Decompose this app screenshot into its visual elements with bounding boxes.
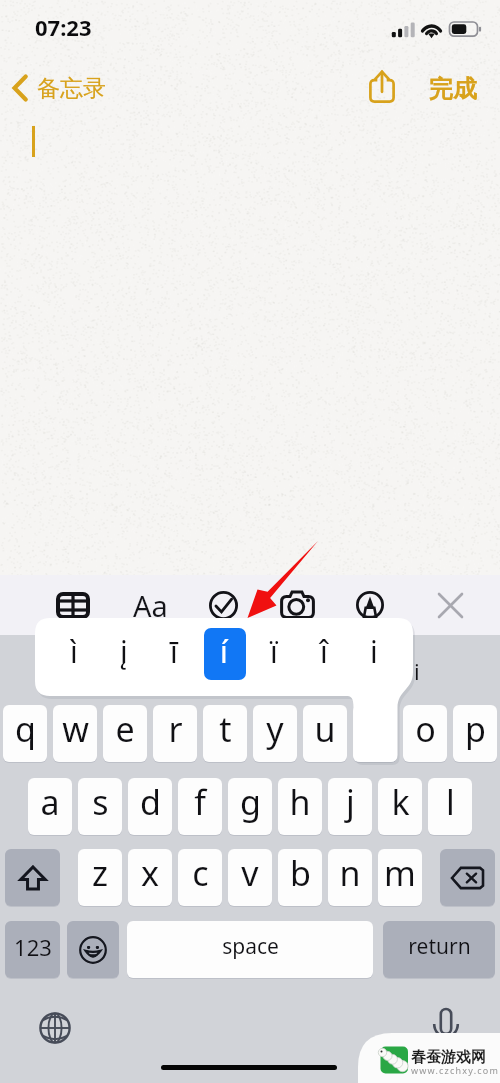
staticText: ï	[270, 631, 278, 672]
staticText: ì	[70, 631, 78, 672]
button[interactable]: h	[278, 778, 322, 835]
staticText: t	[219, 706, 232, 752]
button[interactable]: í	[202, 628, 246, 680]
button[interactable]: s	[78, 778, 122, 835]
staticText: k	[391, 779, 410, 825]
button[interactable]	[204, 628, 246, 680]
button[interactable]: ì	[52, 628, 96, 680]
button[interactable]: Share	[359, 64, 405, 110]
button[interactable]: f	[178, 778, 222, 835]
button[interactable]: Table	[48, 575, 98, 635]
staticText: e	[115, 706, 135, 752]
staticText: a	[40, 779, 60, 825]
staticText: c	[192, 850, 209, 896]
button[interactable]: Shift	[5, 849, 60, 906]
staticText: p	[465, 706, 486, 752]
staticText: u	[314, 706, 336, 752]
button[interactable]: a	[28, 778, 72, 835]
staticText: 07:23	[35, 12, 92, 42]
button[interactable]: 备忘录	[4, 66, 114, 110]
button[interactable]: space	[127, 921, 373, 978]
button[interactable]: 完成	[416, 66, 490, 112]
staticText: b	[290, 850, 311, 896]
staticText: r	[168, 706, 183, 752]
button[interactable]: c	[178, 849, 222, 906]
staticText: m	[384, 850, 416, 896]
button[interactable]: g	[228, 778, 272, 835]
button[interactable]: i	[353, 705, 397, 762]
button[interactable]: return	[383, 921, 495, 978]
button[interactable]: n	[328, 849, 372, 906]
staticText: į	[120, 631, 128, 672]
staticText: d	[140, 779, 161, 825]
staticText: x	[141, 850, 159, 896]
button[interactable]: m	[378, 849, 422, 906]
button[interactable]: Camera	[272, 575, 322, 635]
staticText: 春蚕游戏网	[411, 1048, 486, 1067]
button[interactable]: 123	[5, 921, 60, 978]
staticText: 备忘录	[37, 74, 106, 103]
button[interactable]: j	[328, 778, 372, 835]
button[interactable]: y	[253, 705, 297, 762]
button[interactable]: Markup	[345, 575, 395, 635]
staticText: Aa	[133, 586, 168, 625]
staticText: w	[62, 706, 89, 752]
staticText: í	[220, 631, 228, 672]
staticText: l	[446, 779, 455, 825]
button[interactable]: i	[352, 628, 396, 680]
staticText: f	[194, 779, 206, 825]
button[interactable]: p	[453, 705, 497, 762]
button[interactable]: e	[103, 705, 147, 762]
staticText: n	[339, 850, 361, 896]
button[interactable]: į	[102, 628, 146, 680]
staticText: i	[370, 631, 378, 672]
staticText: h	[289, 779, 311, 825]
button[interactable]: d	[128, 778, 172, 835]
button[interactable]: l	[428, 778, 472, 835]
button[interactable]: t	[203, 705, 247, 762]
staticText: 完成	[429, 74, 477, 104]
staticText: return	[408, 932, 471, 961]
staticText: 123	[14, 932, 52, 962]
button[interactable]: b	[278, 849, 322, 906]
staticText: z	[92, 850, 108, 896]
button[interactable]: Backspace	[440, 849, 495, 906]
staticText: î	[320, 631, 328, 672]
button[interactable]: Checklist	[198, 575, 248, 635]
button[interactable]: o	[403, 705, 447, 762]
staticText: space	[222, 932, 279, 961]
button[interactable]: z	[78, 849, 122, 906]
staticText: v	[241, 850, 259, 896]
button[interactable]: Close	[425, 575, 475, 635]
button[interactable]: v	[228, 849, 272, 906]
button[interactable]: î	[302, 628, 346, 680]
button[interactable]: q	[3, 705, 47, 762]
staticText: www.czchxy.com	[411, 1064, 500, 1076]
button[interactable]: k	[378, 778, 422, 835]
button[interactable]: ï	[252, 628, 296, 680]
button[interactable]: ī	[152, 628, 196, 680]
staticText: g	[240, 779, 261, 825]
button[interactable]: Emoji	[67, 921, 119, 978]
button[interactable]: r	[153, 705, 197, 762]
button[interactable]: Dictation	[423, 1004, 468, 1046]
staticText: o	[415, 706, 436, 752]
staticText: i	[414, 656, 420, 686]
button[interactable]: u	[303, 705, 347, 762]
staticText: y	[266, 706, 284, 752]
button[interactable]: w	[53, 705, 97, 762]
button[interactable]: Switch keyboard	[32, 1005, 78, 1051]
staticText: ī	[170, 631, 178, 672]
staticText: s	[92, 779, 109, 825]
button[interactable]: Aa	[125, 575, 176, 635]
staticText: j	[346, 779, 355, 825]
button[interactable]: x	[128, 849, 172, 906]
staticText: q	[15, 706, 36, 752]
